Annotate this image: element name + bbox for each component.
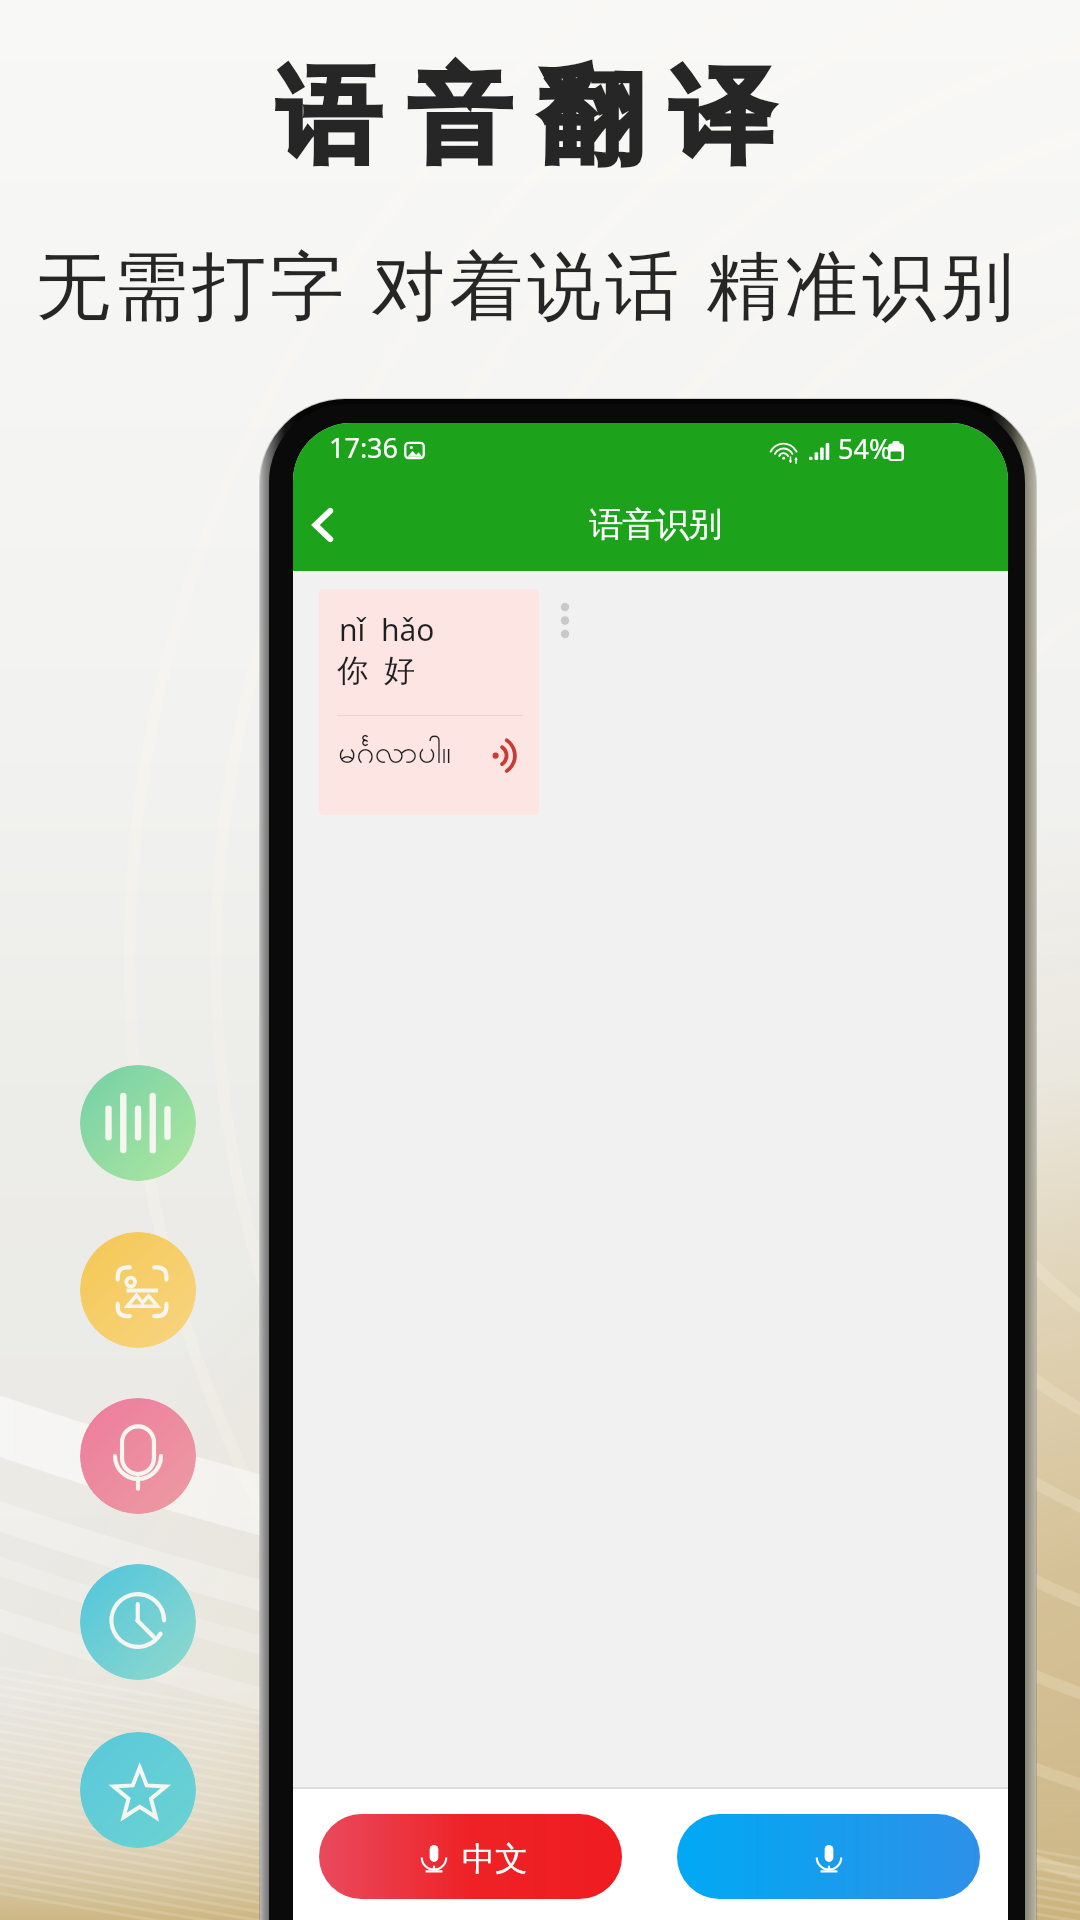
button[interactable]: 中文	[319, 1814, 622, 1899]
button[interactable]: Speak foreign language	[677, 1814, 980, 1899]
staticText: 17:36	[329, 429, 399, 466]
button[interactable]: Microphone	[80, 1398, 196, 1514]
staticText: 无需打字 对着说话 精准识别	[36, 233, 1019, 334]
button[interactable]: nǐ hǎo	[319, 589, 539, 815]
button[interactable]: Favorites	[80, 1732, 196, 1848]
staticText: nǐ hǎo	[339, 609, 435, 650]
button[interactable]: Back	[293, 480, 357, 571]
button[interactable]: History	[80, 1564, 196, 1680]
button[interactable]: More options	[549, 579, 589, 635]
button[interactable]: Voice wave	[80, 1065, 196, 1181]
button[interactable]: Photo translate	[80, 1232, 196, 1348]
staticText: 语音翻译	[263, 52, 787, 183]
staticText: 中文	[462, 1838, 528, 1880]
staticText: မင်္ဂလာပါ။	[338, 731, 452, 778]
staticText: 54%	[838, 430, 892, 467]
staticText: 语音识别	[589, 503, 722, 546]
staticText: 你 好	[337, 648, 416, 690]
